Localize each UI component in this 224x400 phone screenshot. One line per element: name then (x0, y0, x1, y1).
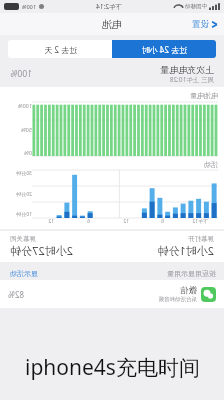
staticText: 屏幕打开 (188, 235, 214, 243)
staticText: 2小时1分钟 (157, 243, 214, 258)
staticText: 周三 上午10:28 (169, 75, 214, 84)
button[interactable]: 过去 2 天 (8, 40, 112, 58)
staticText: 后台活动和音频 (158, 296, 197, 303)
button[interactable]: 过去 24 小时 (112, 40, 216, 58)
staticText: 按应用显示用量 (167, 269, 216, 278)
staticText: 活动 (204, 160, 218, 169)
staticText: 6 (87, 218, 90, 225)
staticText: 50% (21, 126, 32, 133)
staticText: 设置 (192, 19, 209, 30)
staticText: 100% (21, 3, 36, 10)
staticText: 10分钟 (16, 211, 32, 218)
staticText: 下午2:14 (96, 2, 122, 11)
staticText: 0% (24, 149, 32, 156)
staticText: 中国移动 (185, 3, 207, 10)
button[interactable]: 82% (0, 280, 224, 308)
staticText: 微信 (180, 285, 197, 296)
staticText: 显示活动 (10, 269, 38, 278)
staticText: 电池 (102, 18, 122, 31)
staticText: 12 (48, 218, 54, 225)
staticText: 屏幕关闭 (10, 235, 36, 243)
staticText: 下午12 (192, 218, 208, 225)
staticText: 上次充电电量 (160, 64, 214, 75)
staticText: 电池电量 (190, 91, 218, 100)
staticText: 2小时27分钟 (10, 243, 73, 258)
staticText: 30分钟 (16, 170, 32, 177)
staticText: 过去 24 小时 (141, 44, 187, 55)
staticText: 过去 2 天 (44, 44, 77, 55)
staticText: iphone4s充电时间 (25, 353, 200, 382)
button[interactable]: 显示活动 (8, 267, 40, 280)
button[interactable]: 设置 (186, 19, 224, 30)
staticText: 12 (123, 218, 129, 225)
staticText: 6 (161, 218, 164, 225)
staticText: 100% (10, 68, 32, 80)
staticText: 82% (8, 289, 24, 300)
staticText: 100% (17, 102, 32, 109)
staticText: 20分钟 (16, 191, 32, 198)
